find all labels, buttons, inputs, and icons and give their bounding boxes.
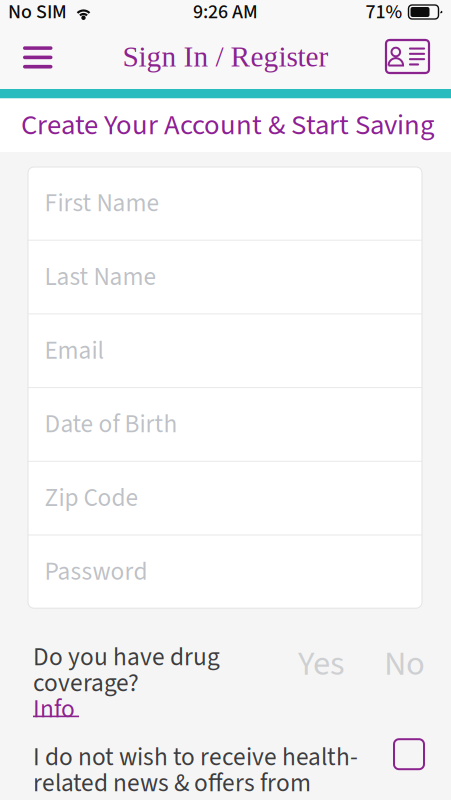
staticText: 9:26 AM (193, 0, 258, 26)
staticText: 71% (365, 0, 402, 26)
button[interactable]: Info (33, 691, 80, 717)
staticText: I do not wish to receive health- (33, 739, 358, 775)
button[interactable]: Email (28, 314, 422, 387)
staticText: Do you have drug (33, 639, 220, 675)
button[interactable]: Menu (0, 24, 70, 89)
button[interactable]: First Name (28, 167, 422, 240)
staticText: Yes (298, 639, 345, 689)
staticText: Zip Code (44, 480, 138, 516)
button[interactable]: Member ID card (368, 24, 451, 89)
staticText: First Name (44, 185, 159, 221)
staticText: Info (33, 691, 75, 727)
button[interactable]: Date of Birth (28, 388, 422, 461)
button[interactable]: Password (28, 535, 422, 608)
staticText: Date of Birth (44, 406, 177, 442)
staticText: Create Your Account & Start Saving (21, 105, 434, 146)
button[interactable]: Zip Code (28, 462, 422, 534)
staticText: related news & offers from (33, 765, 311, 800)
button[interactable]: Opt out of health news and offers (394, 739, 424, 769)
button[interactable]: Last Name (28, 241, 422, 313)
staticText: coverage? (33, 665, 139, 701)
staticText: Last Name (44, 259, 156, 295)
staticText: No SIM (8, 0, 67, 26)
staticText: Email (44, 333, 103, 369)
staticText: Password (44, 554, 147, 590)
staticText: Sign In / Register (122, 40, 328, 73)
staticText: No (384, 639, 425, 689)
